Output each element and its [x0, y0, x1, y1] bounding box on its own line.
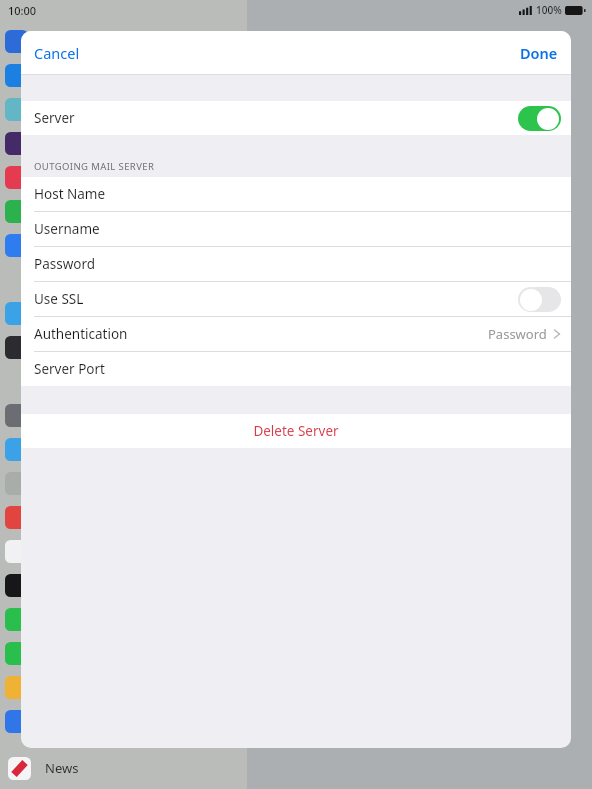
- staticText: Host Name: [34, 185, 106, 203]
- button[interactable]: Use SSL: [21, 282, 571, 316]
- button[interactable]: Server Port: [21, 352, 571, 386]
- button[interactable]: Off: [518, 287, 561, 312]
- button[interactable]: On: [518, 106, 561, 131]
- staticText: Server Port: [34, 360, 105, 378]
- button[interactable]: Password: [21, 247, 571, 281]
- staticText: Cancel: [34, 43, 80, 63]
- staticText: OUTGOING MAIL SERVER: [34, 160, 155, 173]
- button[interactable]: News: [0, 747, 247, 789]
- staticText: Password: [488, 325, 547, 343]
- button[interactable]: Cancel: [21, 35, 93, 71]
- button[interactable]: Username: [21, 212, 571, 246]
- staticText: Server: [34, 109, 75, 127]
- other: More: [554, 329, 560, 339]
- staticText: Password: [34, 255, 96, 273]
- button[interactable]: Host Name: [21, 177, 571, 211]
- button[interactable]: Done: [507, 35, 571, 71]
- button[interactable]: Server: [21, 101, 571, 135]
- staticText: Authentication: [34, 325, 128, 343]
- staticText: Username: [34, 220, 100, 238]
- staticText: Use SSL: [34, 290, 84, 308]
- staticText: 10:00: [8, 3, 37, 18]
- button[interactable]: Authentication: [21, 317, 571, 351]
- staticText: News: [45, 759, 79, 777]
- staticText: Done: [520, 43, 558, 63]
- button[interactable]: Delete Server: [21, 414, 571, 448]
- staticText: 100%: [536, 3, 562, 17]
- staticText: Delete Server: [253, 422, 339, 440]
